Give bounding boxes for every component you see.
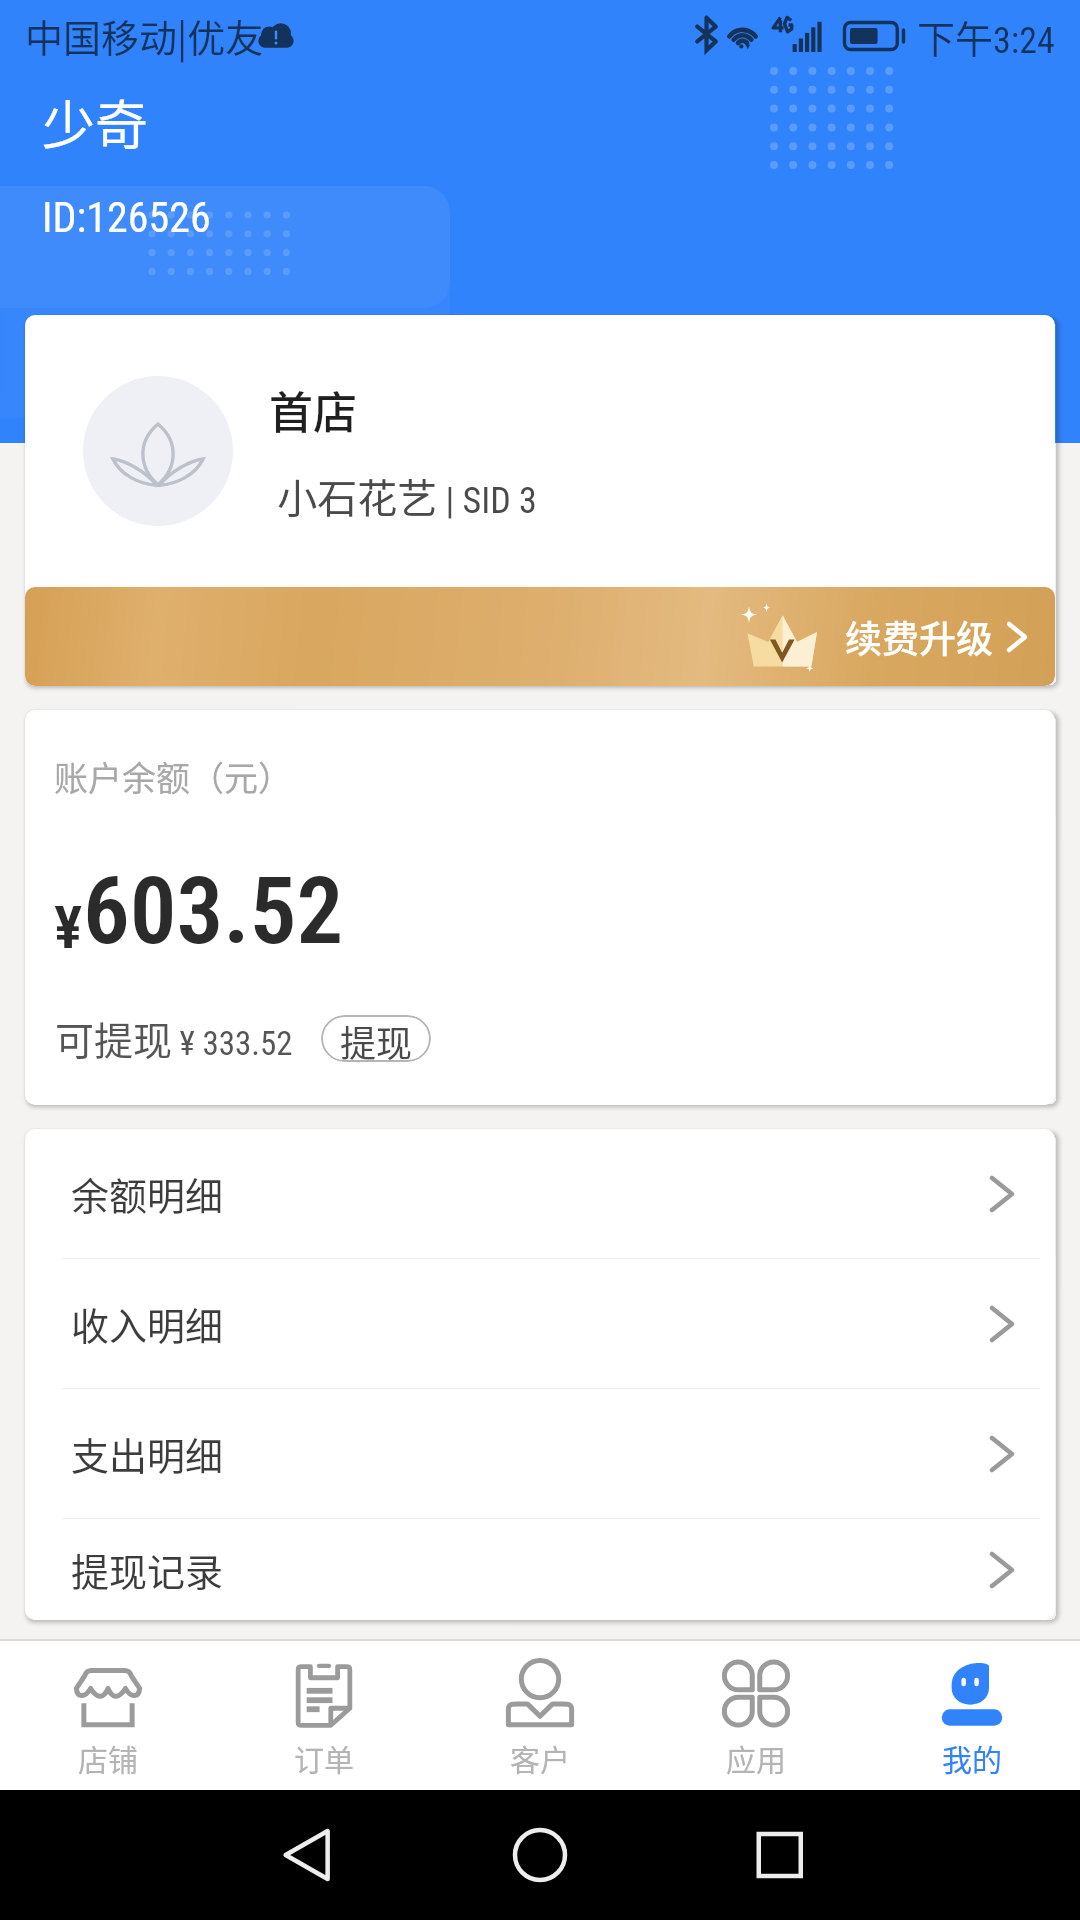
staticText: ¥ — [54, 892, 83, 962]
button[interactable]: 提现记录 — [25, 1519, 1055, 1620]
staticText: 余额明细 — [71, 1166, 224, 1221]
staticText: 应用 — [726, 1736, 786, 1779]
staticText: 续费升级 — [845, 610, 993, 664]
staticText: 小石花艺 | SID 3 — [269, 467, 537, 525]
staticText: 账户余额（元） — [54, 752, 292, 801]
button[interactable]: 收入明细 — [25, 1259, 1055, 1388]
button[interactable]: 提现 — [321, 1015, 431, 1062]
staticText: 下午3:24 — [917, 9, 1055, 64]
staticText: 店铺 — [78, 1736, 138, 1779]
staticText: 订单 — [294, 1736, 354, 1779]
button[interactable]: 应用 — [648, 1641, 864, 1790]
button[interactable]: 客户 — [432, 1641, 648, 1790]
staticText: 我的 — [942, 1736, 1002, 1779]
staticText: ID:126526 — [42, 193, 211, 242]
staticText: 提现记录 — [71, 1542, 224, 1597]
staticText: 可提现 ¥ 333.52 — [55, 1010, 293, 1066]
staticText: 提现 — [340, 1015, 413, 1062]
staticText: 支出明细 — [71, 1426, 224, 1481]
button[interactable]: 我的 — [864, 1641, 1080, 1790]
button[interactable]: 支出明细 — [25, 1389, 1055, 1518]
staticText: 首店 — [269, 378, 357, 442]
staticText: 603.52 — [83, 857, 344, 966]
button[interactable]: 订单 — [216, 1641, 432, 1790]
staticText: 收入明细 — [71, 1296, 224, 1351]
button[interactable]: 首店 — [25, 315, 1055, 587]
staticText: 中国移动|优友 — [25, 8, 264, 63]
staticText: 客户 — [510, 1736, 570, 1779]
button[interactable]: 续费升级 — [25, 587, 1055, 686]
staticText: 少奇 — [42, 84, 148, 161]
button[interactable]: 余额明细 — [25, 1129, 1055, 1258]
button[interactable]: 店铺 — [0, 1641, 216, 1790]
